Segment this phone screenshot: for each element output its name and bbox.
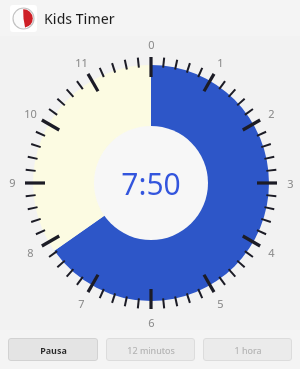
staticText: 1 hora [234,344,262,356]
staticText: 7:50 [121,163,181,204]
button[interactable]: Kids Timer [10,5,37,32]
staticText: 8 [27,245,34,260]
button[interactable]: Pausa [8,338,98,361]
staticText: 4 [268,245,275,260]
staticText: 3 [287,176,294,191]
staticText: 11 [75,55,88,70]
staticText: Kids Timer [44,9,115,28]
staticText: 6 [148,315,155,330]
staticText: 5 [217,296,224,311]
staticText: 9 [9,175,16,190]
staticText: 7 [78,296,85,311]
staticText: 0 [148,37,155,52]
button[interactable]: 12 minutos [106,338,195,361]
staticText: 12 minutos [127,344,175,356]
staticText: 2 [268,106,275,121]
staticText: 1 [217,55,224,70]
button[interactable]: 1 hora [203,338,292,361]
staticText: 10 [24,106,37,121]
staticText: Pausa [40,344,67,356]
